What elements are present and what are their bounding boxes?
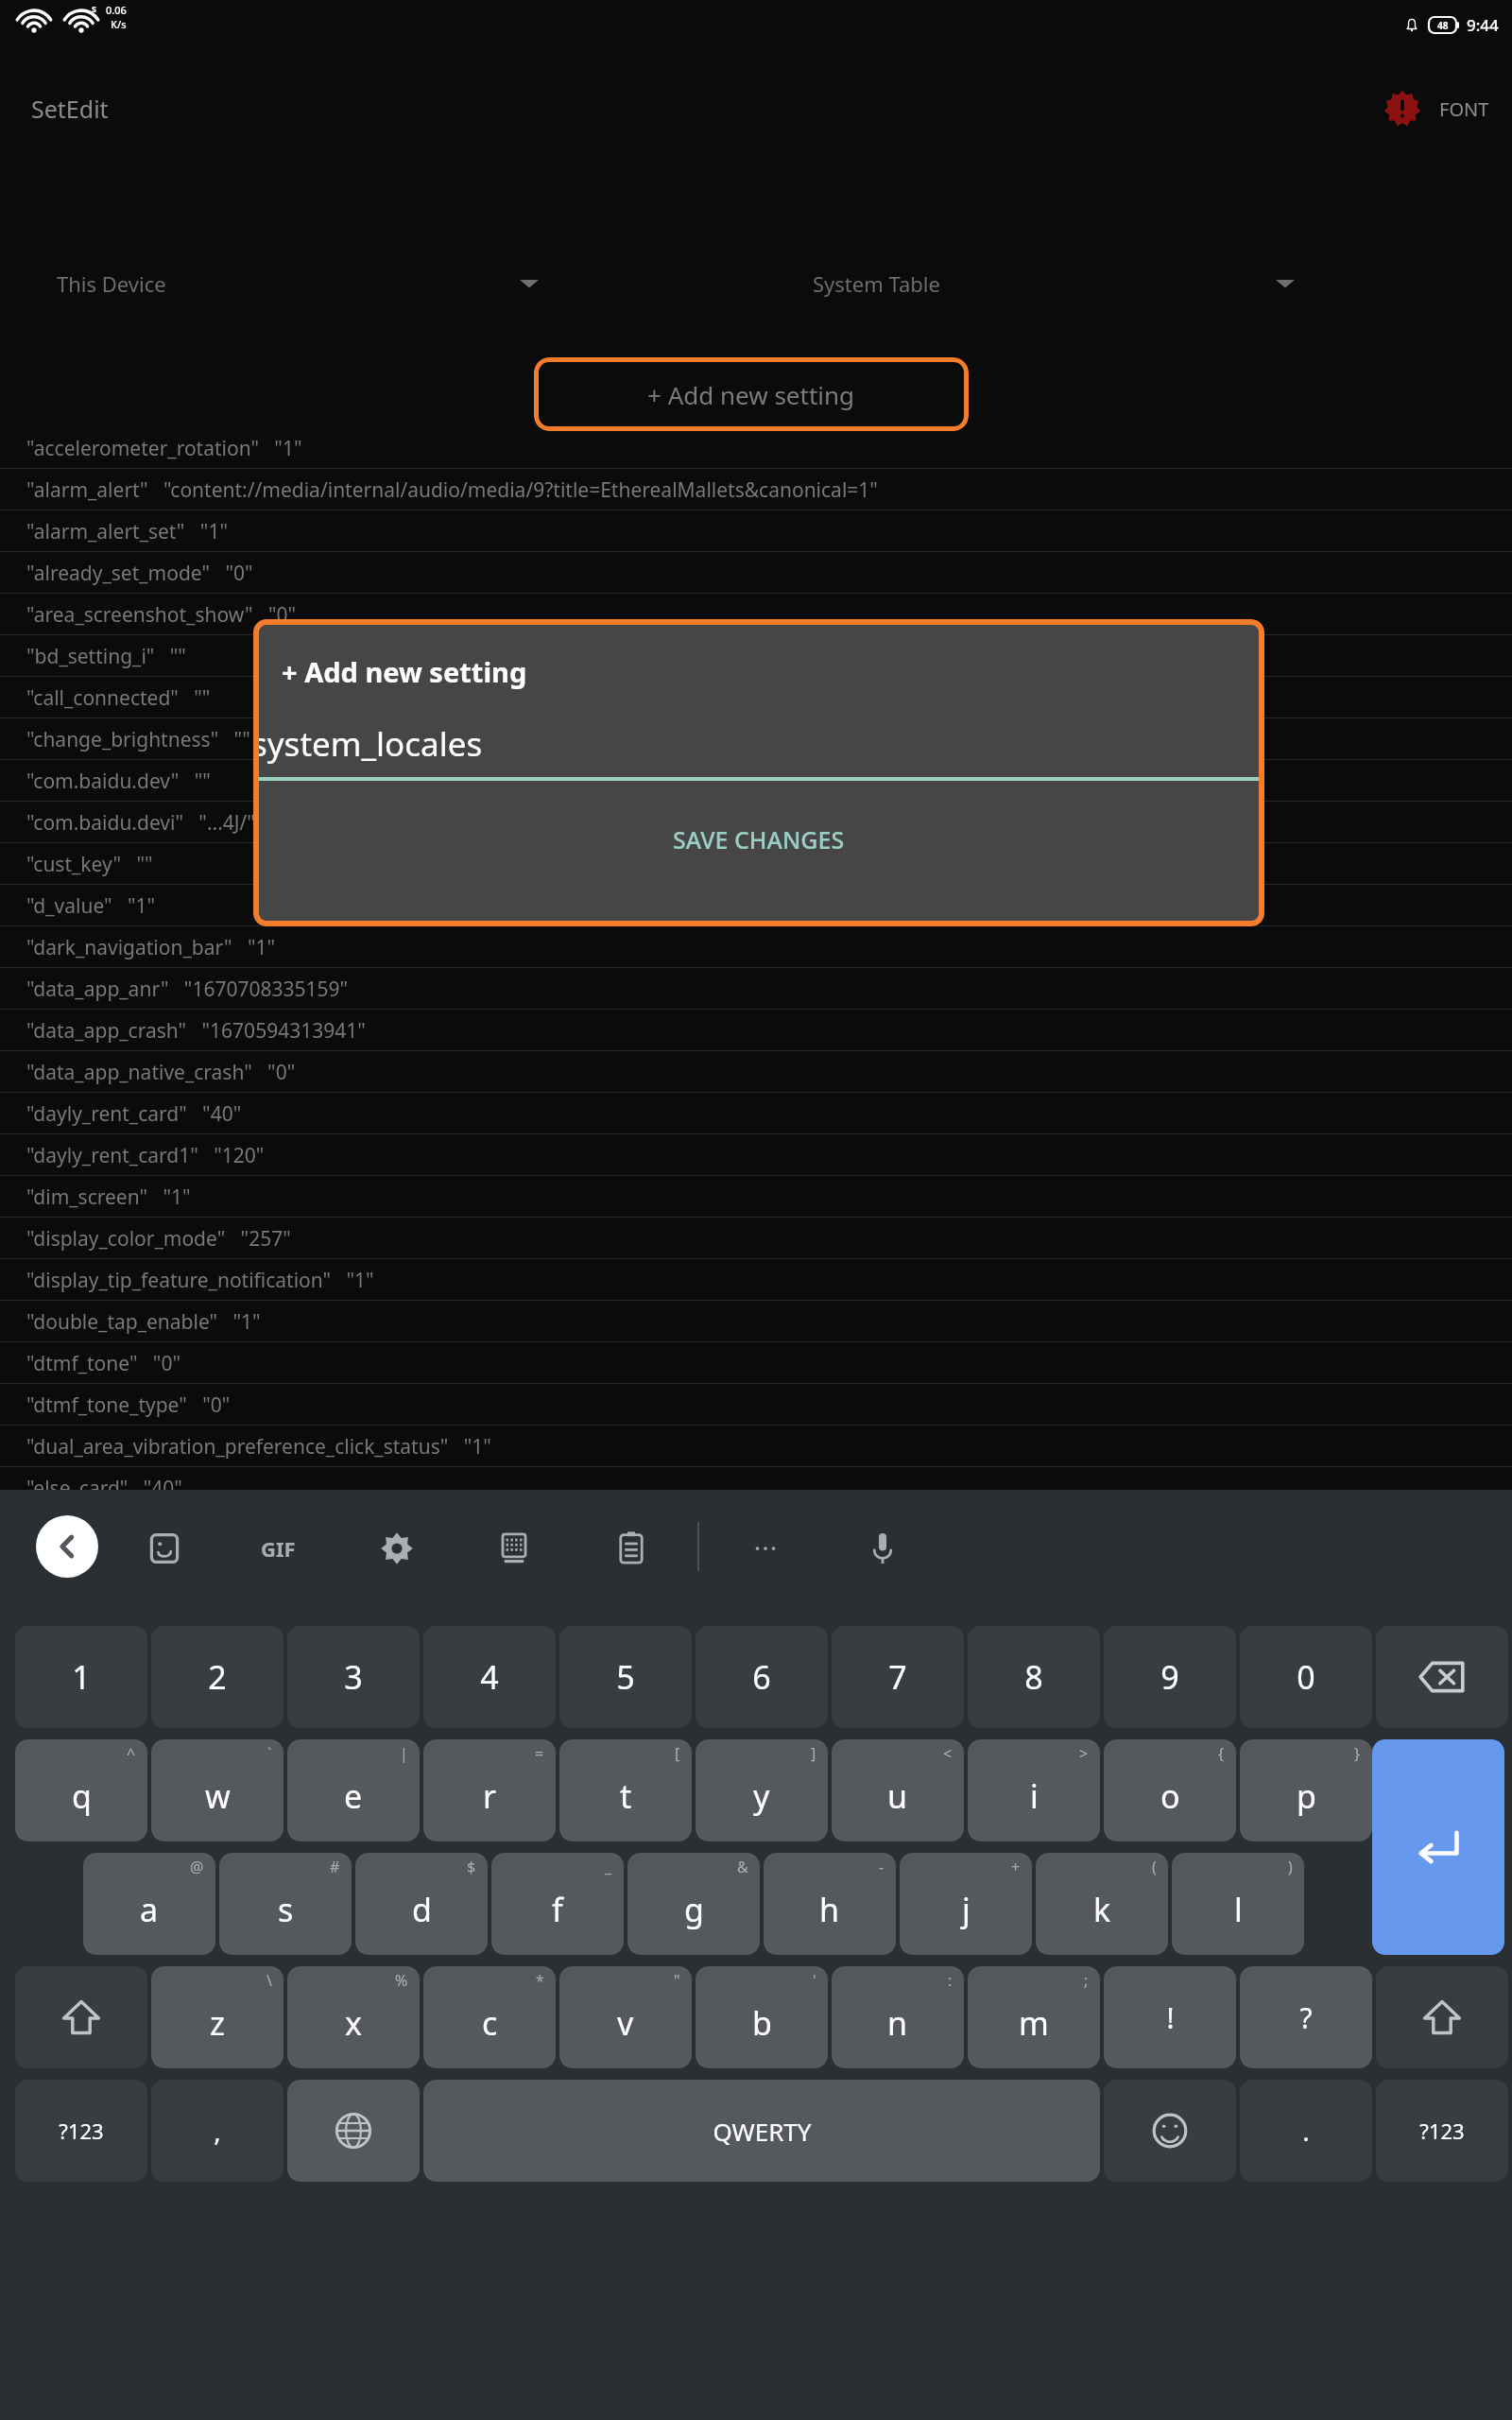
button[interactable]: "already_set_mode" "0"	[0, 552, 1512, 594]
button[interactable]: `	[151, 1739, 283, 1841]
button[interactable]: [	[559, 1739, 692, 1841]
button[interactable]: Backspace	[1376, 1626, 1508, 1728]
button[interactable]: 5	[559, 1626, 692, 1728]
button[interactable]: System Table	[756, 255, 1512, 312]
button[interactable]: This Device	[0, 255, 756, 312]
staticText: q	[72, 1774, 92, 1818]
button[interactable]: \	[151, 1966, 283, 2068]
button[interactable]: "dark_navigation_bar" "1"	[0, 926, 1512, 968]
button[interactable]: ?123	[15, 2080, 147, 2182]
button[interactable]: !	[1104, 1966, 1236, 2068]
button[interactable]: "bd_setting_i" ""	[0, 635, 1512, 677]
button[interactable]: *	[423, 1966, 556, 2068]
button[interactable]: ;	[968, 1966, 1100, 2068]
button[interactable]: }	[1240, 1739, 1372, 1841]
button[interactable]: =	[423, 1739, 556, 1841]
button[interactable]: SAVE CHANGES	[253, 794, 1264, 926]
button[interactable]: 4	[423, 1626, 556, 1728]
button[interactable]: ]	[696, 1739, 828, 1841]
button[interactable]: 9	[1104, 1626, 1236, 1728]
button[interactable]: Shift	[1376, 1966, 1508, 2068]
button[interactable]: "data_app_crash" "1670594313941"	[0, 1010, 1512, 1051]
staticText: GIF	[261, 1534, 296, 1563]
staticText: "else_card" "40"	[26, 1475, 182, 1502]
button[interactable]: "dtmf_tone" "0"	[0, 1342, 1512, 1384]
button[interactable]: "double_tap_enable" "1"	[0, 1301, 1512, 1342]
staticText: FONT	[1439, 96, 1489, 122]
button[interactable]: "com.baidu.dev" ""	[0, 760, 1512, 802]
button[interactable]: |	[287, 1739, 420, 1841]
button[interactable]: "cust_key" ""	[0, 843, 1512, 885]
button[interactable]: 1	[15, 1626, 147, 1728]
button[interactable]: "change_brightness" ""	[0, 718, 1512, 760]
button[interactable]: "data_app_anr" "1670708335159"	[0, 968, 1512, 1010]
button[interactable]: "d_value" "1"	[0, 885, 1512, 926]
button[interactable]: 6	[696, 1626, 828, 1728]
button[interactable]: >	[968, 1739, 1100, 1841]
button[interactable]: "dayly_rent_card" "40"	[0, 1093, 1512, 1134]
button[interactable]: #	[219, 1853, 352, 1955]
button[interactable]: "data_app_native_crash" "0"	[0, 1051, 1512, 1093]
button[interactable]: 8	[968, 1626, 1100, 1728]
staticText: "bd_setting_i" ""	[26, 643, 186, 670]
button[interactable]: 7	[832, 1626, 964, 1728]
button[interactable]: "	[559, 1966, 692, 2068]
staticText: {	[1218, 1743, 1225, 1764]
button[interactable]: +	[900, 1853, 1032, 1955]
button[interactable]: "com.baidu.devi" "...4J/"	[0, 802, 1512, 843]
button[interactable]: @	[83, 1853, 215, 1955]
button[interactable]: "else_card" "40"	[0, 1467, 1512, 1509]
staticText: This Device	[57, 269, 166, 298]
button[interactable]: _	[491, 1853, 624, 1955]
staticText: i	[1030, 1774, 1039, 1818]
button[interactable]: "dual_area_vibration_preference_click_st…	[0, 1426, 1512, 1467]
button[interactable]: .	[1240, 2080, 1372, 2182]
button[interactable]: Clipboard	[601, 1518, 661, 1579]
button[interactable]: Voice input	[852, 1518, 913, 1579]
button[interactable]: Enter	[1372, 1739, 1504, 1955]
button[interactable]: Warning	[1381, 87, 1424, 130]
button[interactable]: 2	[151, 1626, 283, 1728]
button[interactable]: "dim_screen" "1"	[0, 1176, 1512, 1218]
button[interactable]: Sticker	[134, 1518, 195, 1579]
button[interactable]: "alarm_alert_set" "1"	[0, 510, 1512, 552]
button[interactable]: :	[832, 1966, 964, 2068]
button[interactable]: 3	[287, 1626, 420, 1728]
button[interactable]: + Add new setting	[534, 357, 969, 431]
button[interactable]: "display_tip_feature_notification" "1"	[0, 1259, 1512, 1301]
button[interactable]: Shift	[15, 1966, 147, 2068]
button[interactable]: QWERTY	[423, 2080, 1100, 2182]
button[interactable]: "dayly_rent_card1" "120"	[0, 1134, 1512, 1176]
button[interactable]: ?123	[1376, 2080, 1508, 2182]
button[interactable]: "dtmf_tone_type" "0"	[0, 1384, 1512, 1426]
button[interactable]: "display_color_mode" "257"	[0, 1218, 1512, 1259]
button[interactable]: More options	[735, 1518, 796, 1579]
button[interactable]: Change language	[287, 2080, 420, 2182]
button[interactable]: Emoji	[1104, 2080, 1236, 2182]
button[interactable]: %	[287, 1966, 420, 2068]
button[interactable]: {	[1104, 1739, 1236, 1841]
button[interactable]: FONT	[1435, 89, 1493, 130]
button[interactable]: Keyboard layout	[484, 1518, 544, 1579]
button[interactable]: Back	[36, 1515, 98, 1578]
button[interactable]: 0	[1240, 1626, 1372, 1728]
button[interactable]: -	[764, 1853, 896, 1955]
button[interactable]: '	[696, 1966, 828, 2068]
button[interactable]: &	[627, 1853, 760, 1955]
button[interactable]: )	[1172, 1853, 1304, 1955]
button[interactable]: "alarm_alert" "content://media/internal/…	[0, 469, 1512, 510]
staticText: "com.baidu.devi" "...4J/"	[26, 809, 255, 837]
staticText: "d_value" "1"	[26, 892, 156, 920]
button[interactable]: ,	[151, 2080, 283, 2182]
button[interactable]: GIF	[248, 1518, 308, 1579]
button[interactable]: $	[355, 1853, 488, 1955]
button[interactable]: (	[1036, 1853, 1168, 1955]
button[interactable]: "area_screenshot_show" "0"	[0, 594, 1512, 635]
button[interactable]: "call_connected" ""	[0, 677, 1512, 718]
button[interactable]: <	[832, 1739, 964, 1841]
button[interactable]: ?	[1240, 1966, 1372, 2068]
button[interactable]: "accelerometer_rotation" "1"	[0, 427, 1512, 469]
staticText: SetEdit	[31, 93, 109, 125]
button[interactable]: ^	[15, 1739, 147, 1841]
button[interactable]: Settings	[367, 1518, 427, 1579]
